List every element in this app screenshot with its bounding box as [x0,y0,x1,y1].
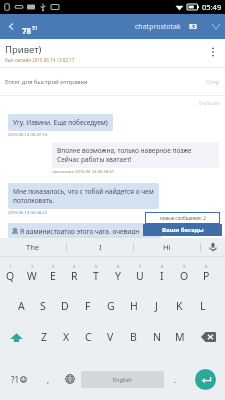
staticText: Сейчас работы хватает! [57,155,132,164]
staticText: 2016.06.14 06:38:22 [8,210,48,216]
staticText: был онлайн 2016.06.14 13:02:17 [5,57,75,63]
staticText: E [50,269,56,283]
button[interactable]: G [99,289,122,322]
staticText: Hi [163,242,171,252]
button[interactable]: 7 [129,257,151,289]
staticText: I [99,242,102,252]
staticText: I [160,269,164,283]
staticText: Q [6,269,15,283]
button[interactable]: K [168,289,191,322]
staticText: Угу. Извини. Еще побеседуем) [13,118,108,127]
staticText: A [18,299,25,313]
button[interactable]: V [99,322,122,352]
button[interactable]: Change language [59,358,81,400]
staticText: 5 [95,264,98,269]
staticText: F [85,299,91,313]
button[interactable]: Voice input [201,238,225,256]
button[interactable]: Enter [186,358,225,400]
staticText: V [107,330,114,344]
button[interactable]: ?1 [0,358,37,400]
staticText: N [153,330,161,344]
staticText: The [26,242,40,252]
button[interactable]: The [0,238,66,256]
staticText: Z [41,330,48,344]
button[interactable]: 4 [63,257,85,289]
staticText: , [47,374,50,385]
button[interactable]: F [76,289,99,322]
staticText: C [85,330,92,344]
button[interactable]: 3 [42,257,63,289]
staticText: T [93,269,99,283]
button[interactable]: M [168,322,191,352]
staticText: J [155,299,158,313]
button[interactable]: , [37,358,59,400]
button[interactable]: Вполне возможна, только наверное позже [52,142,219,168]
staticText: P [203,269,210,283]
button[interactable]: 5 [85,257,107,289]
staticText: Вполне возможна, только наверное позже [57,146,192,155]
staticText: . [174,374,177,385]
button[interactable]: Expand [207,14,225,39]
staticText: English [113,376,132,383]
staticText: прочитано 2016.06.14 06:38:41 [52,169,115,175]
staticText: потолковать. [13,196,55,205]
button[interactable]: Я администратор этого чата, очевидн [8,223,162,238]
staticText: O [180,269,189,283]
button[interactable]: D [54,289,76,322]
staticText: 7 [139,264,142,269]
button[interactable]: Enter для быстрой отправки [0,68,225,95]
button[interactable]: Угу. Извини. Еще побеседуем) [8,114,113,131]
staticText: 05:49 [202,2,222,12]
staticText: 2 [31,264,34,269]
staticText: Enter для быстрой отправки [5,78,88,86]
button[interactable]: N [145,322,168,352]
staticText: chatprostotak [135,22,181,32]
button[interactable]: X [55,322,77,352]
staticText: Больше [199,99,220,106]
staticText: S [40,299,46,313]
staticText: Я администратор этого чата, очевидн [20,227,140,234]
button[interactable]: 0 [195,257,217,289]
button[interactable]: 6 [107,257,129,289]
staticText: B [130,330,137,344]
staticText: 4 [73,264,76,269]
button[interactable]: Back [0,14,22,39]
button[interactable]: Z [33,322,55,352]
staticText: 1 [9,264,12,269]
staticText: 8 [161,264,164,269]
button[interactable]: 8 [151,257,173,289]
button[interactable]: J [145,289,168,322]
button[interactable]: Мне показалось, что с тобой найдется о ч… [8,183,159,209]
button[interactable]: H [122,289,145,322]
button[interactable]: Shift [0,322,33,352]
staticText: G [107,299,115,313]
staticText: U [136,269,144,283]
staticText: 9 [183,264,186,269]
button[interactable]: L [191,289,214,322]
staticText: ?1 [11,374,20,385]
staticText: Отпр [206,78,220,85]
button[interactable]: 9 [173,257,195,289]
button[interactable]: I [67,238,133,256]
staticText: K [176,299,183,313]
staticText: W [27,269,37,283]
button[interactable]: 2 [21,257,42,289]
button[interactable]: English [81,358,164,400]
button[interactable]: A [10,289,32,322]
staticText: R [71,269,78,283]
button[interactable]: Backspace [191,322,225,352]
button[interactable]: C [77,322,99,352]
button[interactable]: More options [204,43,222,61]
staticText: D [61,299,69,313]
staticText: 51 [32,25,38,32]
button[interactable]: Ваши беседы [143,224,222,236]
button[interactable]: Hi [134,238,200,256]
button[interactable]: S [32,289,54,322]
staticText: X [63,330,70,344]
button[interactable]: B [122,322,145,352]
button[interactable]: 1 [0,257,21,289]
staticText: M [175,330,185,344]
staticText: Ваши беседы [162,226,204,234]
staticText: Мне показалось, что с тобой найдется о ч… [13,187,154,196]
